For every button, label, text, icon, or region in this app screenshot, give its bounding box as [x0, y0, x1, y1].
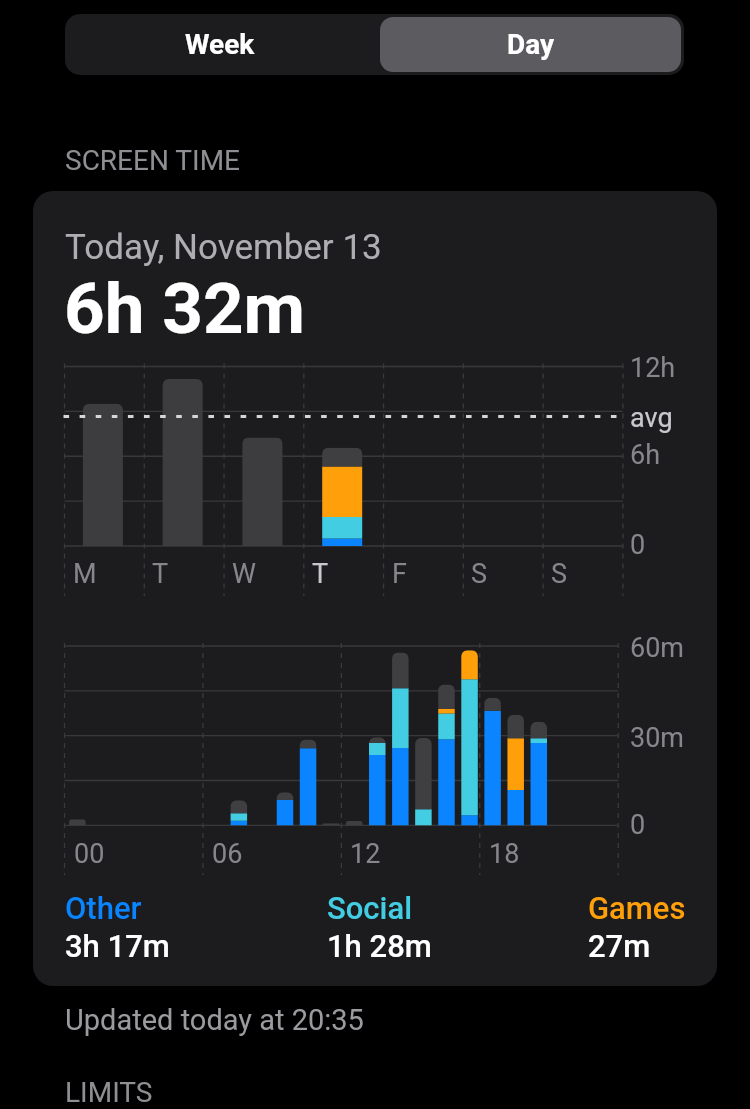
staticText: 00 — [74, 838, 105, 870]
button[interactable]: Other — [65, 890, 170, 964]
staticText: Social — [327, 890, 413, 926]
staticText: T — [312, 558, 329, 590]
staticText: 18 — [489, 838, 520, 870]
staticText: LIMITS — [65, 1076, 153, 1109]
staticText: SCREEN TIME — [65, 144, 240, 177]
staticText: 06 — [212, 838, 243, 870]
button[interactable]: Games — [588, 890, 686, 964]
staticText: F — [392, 558, 407, 590]
staticText: Updated today at 20:35 — [65, 1003, 364, 1037]
staticText: 0 — [630, 529, 646, 561]
staticText: M — [73, 558, 97, 590]
staticText: 30m — [630, 722, 685, 754]
staticText: 1h 28m — [327, 928, 432, 964]
staticText: Other — [65, 890, 142, 926]
staticText: 3h 17m — [65, 928, 170, 964]
staticText: Day — [507, 28, 555, 61]
button[interactable]: Social — [327, 890, 432, 964]
staticText: Today, November 13 — [65, 227, 382, 268]
staticText: Games — [588, 890, 686, 926]
staticText: 6h — [630, 439, 661, 471]
staticText: 60m — [630, 632, 685, 664]
staticText: Week — [185, 28, 255, 61]
staticText: 12 — [350, 838, 381, 870]
staticText: 0 — [630, 809, 646, 841]
staticText: S — [551, 558, 568, 590]
staticText: W — [232, 558, 256, 590]
staticText: 12h — [630, 352, 676, 384]
button[interactable]: Week — [65, 14, 375, 75]
button[interactable]: Day — [380, 17, 681, 72]
button[interactable] — [33, 191, 717, 986]
staticText: 27m — [588, 928, 651, 964]
staticText: avg — [630, 402, 673, 434]
staticText: T — [152, 558, 169, 590]
staticText: S — [471, 558, 488, 590]
staticText: 6h 32m — [64, 267, 306, 350]
